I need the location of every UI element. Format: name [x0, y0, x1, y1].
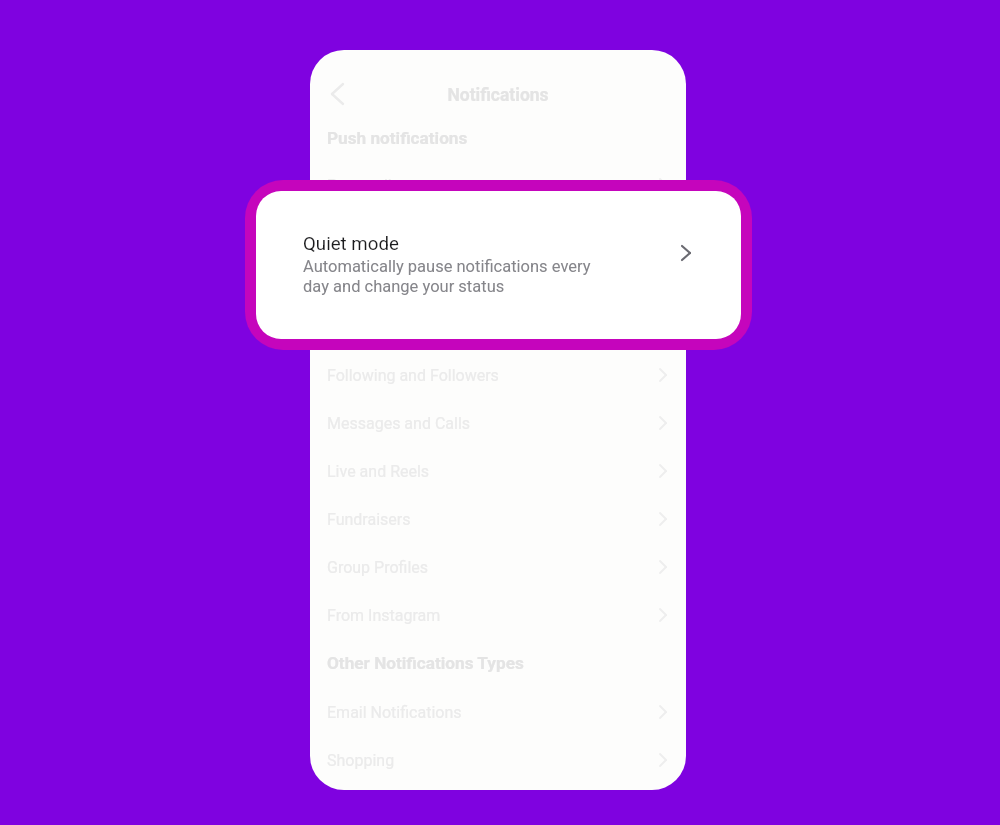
staticText: Notifications	[447, 85, 549, 106]
button[interactable]: Quiet mode	[256, 191, 741, 339]
button[interactable]: Email Notifications	[310, 688, 686, 736]
staticText: Group Profiles	[327, 558, 429, 577]
staticText: Messages and Calls	[327, 414, 471, 433]
button[interactable]: Messages and Calls	[310, 399, 686, 447]
staticText: Fundraisers	[327, 510, 411, 529]
staticText: Quiet mode	[303, 233, 399, 255]
staticText: Email Notifications	[327, 703, 462, 722]
staticText: Other Notifications Types	[327, 653, 524, 673]
button[interactable]: Pause all	[310, 161, 686, 209]
staticText: Automatically pause notifications every …	[303, 256, 591, 296]
staticText: Following and Followers	[327, 366, 499, 385]
button[interactable]: Shopping	[310, 736, 686, 784]
staticText: Push notifications	[327, 128, 468, 148]
staticText: Live and Reels	[327, 462, 430, 481]
staticText: Pause all	[327, 176, 392, 195]
button[interactable]: Following and Followers	[310, 351, 686, 399]
button[interactable]: Back	[318, 75, 356, 113]
staticText: Shopping	[327, 751, 395, 770]
staticText: From Instagram	[327, 606, 441, 625]
